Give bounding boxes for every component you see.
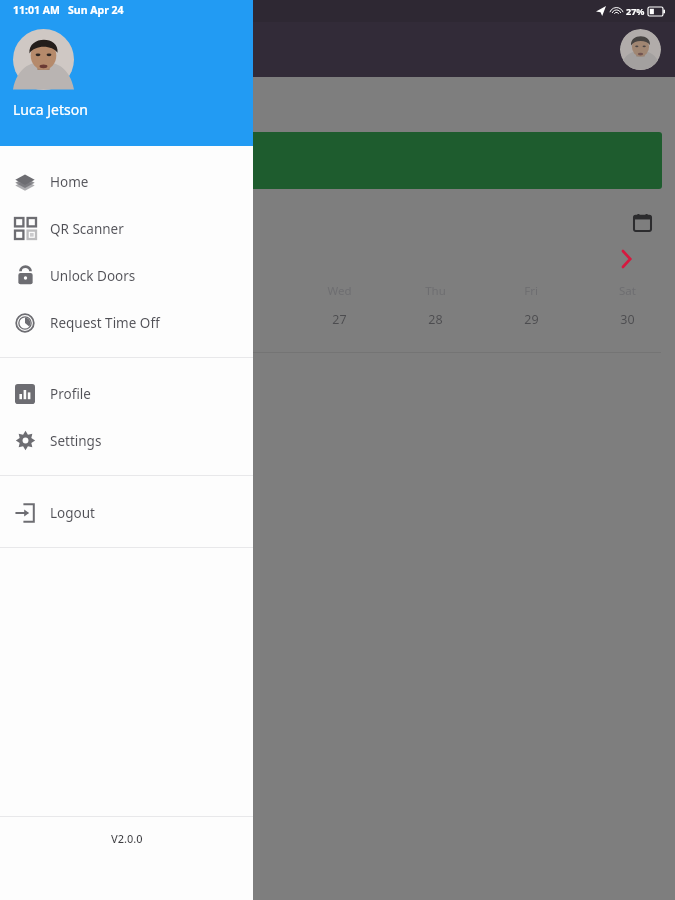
button[interactable]: Profile — [620, 29, 661, 70]
button[interactable]: Thu — [387, 283, 483, 341]
button[interactable]: Profile — [0, 370, 253, 417]
button[interactable]: Unlock Doors — [0, 252, 253, 299]
staticText: Logout — [50, 504, 95, 522]
staticText: Request Time Off — [50, 314, 160, 332]
staticText: Thu — [425, 283, 446, 299]
button[interactable]: Fri — [483, 283, 579, 341]
staticText: 27% — [626, 5, 645, 17]
button[interactable]: Next week — [622, 251, 631, 267]
button[interactable]: Sat — [579, 283, 675, 341]
staticText: Luca Jetson — [44, 40, 125, 60]
staticText: 11:01 AM Sun Apr 24 — [13, 3, 124, 17]
staticText: 25 — [138, 311, 153, 328]
button[interactable]: Mon — [97, 283, 194, 341]
staticText: Profile — [50, 385, 91, 403]
button[interactable]: Calendar — [634, 214, 651, 231]
button[interactable] — [13, 132, 662, 189]
staticText: 29 — [524, 311, 539, 328]
staticText: Home — [50, 173, 89, 191]
staticText: Fri — [524, 283, 538, 299]
button[interactable]: Settings — [0, 417, 253, 464]
staticText: Settings — [50, 432, 102, 450]
button[interactable]: Wed — [291, 283, 387, 341]
staticText: Wed — [327, 283, 352, 299]
button[interactable]: 11:01 AM Sun Apr 24 — [0, 0, 253, 146]
staticText: 27 — [332, 311, 347, 328]
staticText: 24 — [41, 311, 56, 328]
button[interactable]: Tue — [194, 283, 291, 341]
button[interactable]: Request Time Off — [0, 299, 253, 346]
staticText: Sat — [619, 283, 636, 299]
button[interactable]: QR Scanner — [0, 205, 253, 252]
button[interactable]: Home — [0, 158, 253, 205]
staticText: 28 — [428, 311, 443, 328]
staticText: Unlock Doors — [50, 267, 136, 285]
staticText: QR Scanner — [50, 220, 124, 238]
staticText: Luca Jetson — [13, 100, 88, 119]
button[interactable]: Sun — [0, 283, 97, 341]
staticText: V2.0.0 — [111, 831, 143, 846]
button[interactable]: Logout — [0, 489, 253, 536]
staticText: 30 — [620, 311, 635, 328]
